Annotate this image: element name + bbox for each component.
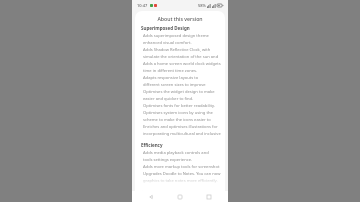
staticText: Adds Shadow Reflective Clock, with shado… bbox=[143, 47, 221, 53]
staticText: 58% bbox=[198, 3, 206, 8]
staticText: easier and quicker to find. bbox=[143, 96, 194, 102]
staticText: Adds more markup tools for screenshot ed… bbox=[143, 164, 221, 170]
staticText: Upgrades Doodle to Notes. You can now dr… bbox=[143, 171, 221, 177]
staticText: enhanced visual comfort. bbox=[143, 40, 192, 46]
staticText: Optimises system icons by using the late… bbox=[143, 110, 221, 116]
staticText: Efficiency bbox=[141, 142, 163, 148]
staticText: Superimposed Design bbox=[141, 25, 190, 31]
staticText: Enriches and optimises illustrations for… bbox=[143, 124, 221, 130]
staticText: Adds media playback controls and optimis… bbox=[143, 150, 221, 156]
staticText: Adapts responsive layouts to accommodate bbox=[143, 75, 221, 81]
staticText: different screen sizes to improve readab… bbox=[143, 82, 221, 88]
staticText: scheme to make the icons easier to recog… bbox=[143, 117, 221, 123]
staticText: incorporating multicultural and inclusiv… bbox=[143, 131, 221, 137]
button[interactable]: Home bbox=[170, 191, 190, 202]
staticText: Adds a home screen world clock widgets s… bbox=[143, 61, 221, 67]
staticText: simulate the orientation of the sun and … bbox=[143, 54, 221, 60]
staticText: time in different time zones. bbox=[143, 68, 198, 74]
staticText: graphics to take notes more efficiently. bbox=[143, 178, 218, 184]
staticText: Adds superimposed design theme colours f… bbox=[143, 33, 221, 39]
staticText: About this version bbox=[157, 15, 203, 22]
button[interactable]: Back bbox=[141, 191, 161, 202]
button[interactable]: Recent apps bbox=[199, 191, 219, 202]
staticText: tools settings experience. bbox=[143, 157, 193, 163]
staticText: Optimises the widget design to make info… bbox=[143, 89, 221, 95]
staticText: Optimises fonts for better readability. bbox=[143, 103, 216, 109]
staticText: 10:47 bbox=[137, 3, 148, 8]
